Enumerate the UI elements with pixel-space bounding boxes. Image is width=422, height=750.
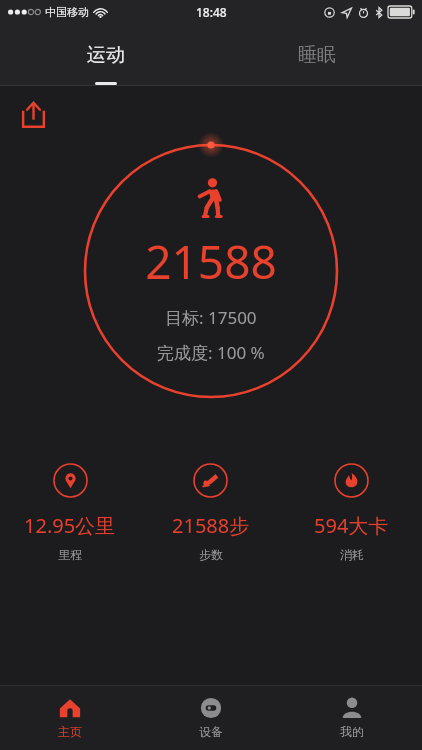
staticText: 步数 (199, 547, 223, 562)
staticText: 目标: 17500 (165, 306, 257, 329)
staticText: 消耗 (340, 547, 364, 562)
staticText: 里程 (58, 547, 82, 562)
staticText: 18:48 (196, 4, 227, 20)
button[interactable]: 睡眠 (211, 24, 422, 86)
button[interactable]: 594大卡 (281, 459, 422, 566)
button[interactable]: 21588步 (140, 459, 281, 566)
button[interactable]: 运动 (0, 24, 211, 86)
button[interactable]: 我的 (281, 686, 422, 750)
staticText: 21588步 (172, 512, 250, 539)
staticText: 主页 (58, 724, 82, 739)
staticText: 中国移动 (45, 5, 89, 19)
staticText: 12.95公里 (24, 512, 116, 539)
staticText: 运动 (87, 43, 125, 67)
staticText: 设备 (199, 724, 223, 739)
staticText: 睡眠 (298, 43, 336, 67)
button[interactable]: 设备 (140, 686, 281, 750)
button[interactable]: 12.95公里 (0, 459, 140, 566)
button[interactable]: 主页 (0, 686, 140, 750)
staticText: 21588 (145, 230, 277, 293)
button[interactable]: Share (12, 94, 54, 136)
staticText: 完成度: 100 % (157, 341, 265, 364)
staticText: 我的 (340, 724, 364, 739)
staticText: 594大卡 (314, 512, 389, 539)
